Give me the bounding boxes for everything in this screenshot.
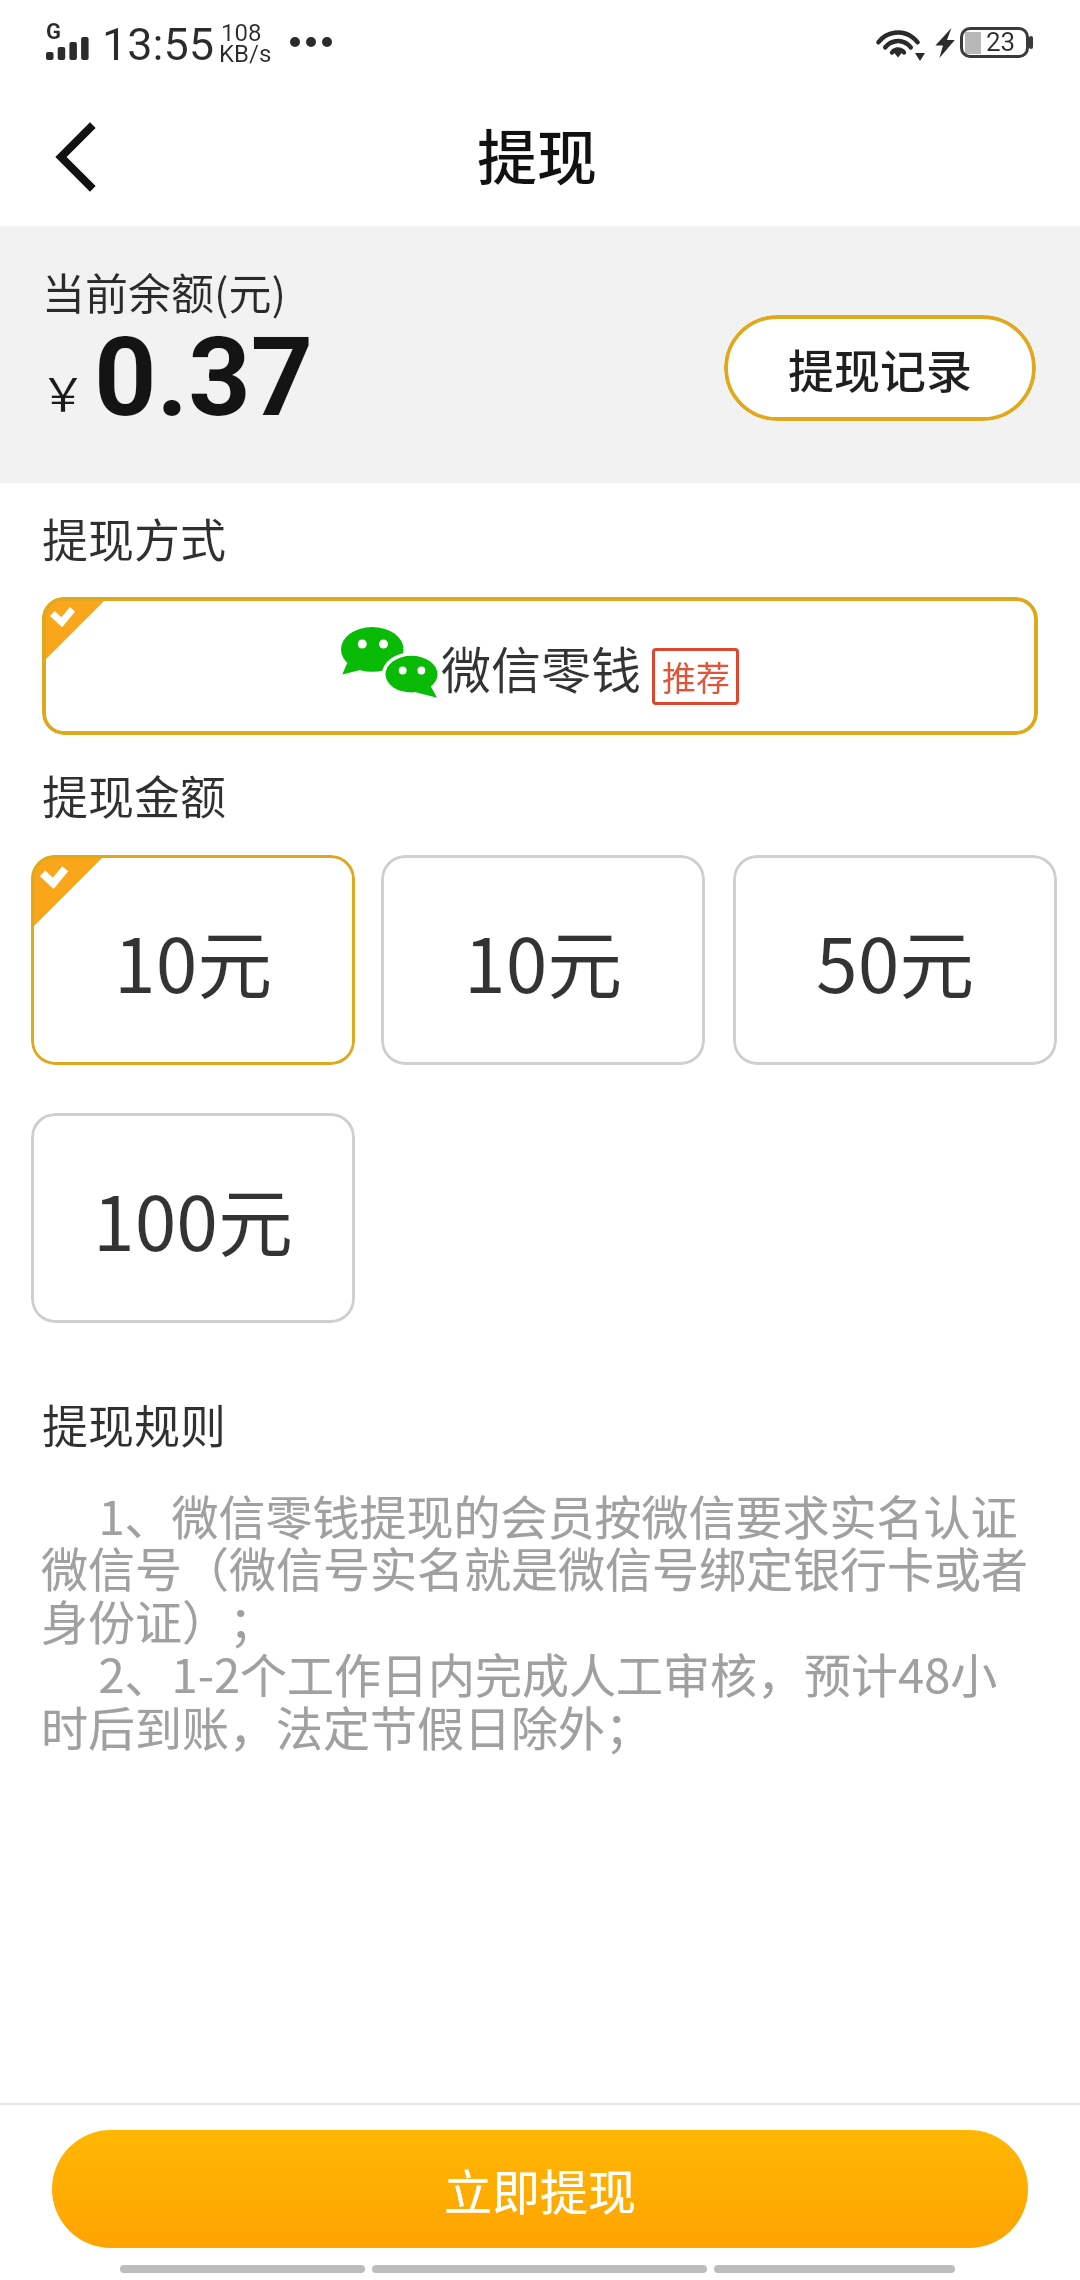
button[interactable]: 立即提现	[52, 2130, 1028, 2248]
button[interactable]: Back	[19, 105, 131, 209]
button[interactable]: 10元	[381, 855, 705, 1065]
staticText: 100元	[93, 1164, 293, 1273]
staticText: 当前余额(元)	[42, 260, 287, 322]
staticText: KB/s	[219, 40, 272, 68]
staticText: 0.37	[94, 314, 314, 442]
staticText: 提现金额	[42, 761, 226, 828]
staticText: G	[46, 19, 61, 45]
staticText: 提现规则	[42, 1390, 226, 1457]
staticText: 10元	[464, 906, 623, 1015]
staticText: 13:55	[102, 18, 215, 71]
button[interactable]: 100元	[31, 1113, 355, 1323]
button[interactable]: 微信零钱	[42, 597, 1038, 735]
staticText: 10元	[114, 906, 273, 1015]
staticText: 23	[986, 27, 1016, 57]
staticText: 50元	[816, 906, 975, 1015]
staticText: 提现记录	[788, 335, 972, 402]
staticText: 108	[221, 19, 262, 47]
button[interactable]: 50元	[733, 855, 1057, 1065]
staticText: 推荐	[662, 652, 730, 701]
staticText: 提现方式	[42, 504, 226, 571]
staticText: 提现	[477, 110, 597, 197]
staticText: 1、微信零钱提现的会员按微信要求实名认证 微信号（微信号实名就是微信号绑定银行卡…	[41, 1480, 1080, 1760]
staticText: ￥	[40, 358, 86, 425]
button[interactable]: 提现记录	[724, 315, 1036, 421]
staticText: 微信零钱	[441, 631, 641, 703]
staticText: 立即提现	[444, 2154, 637, 2224]
button[interactable]: 10元	[31, 855, 355, 1065]
